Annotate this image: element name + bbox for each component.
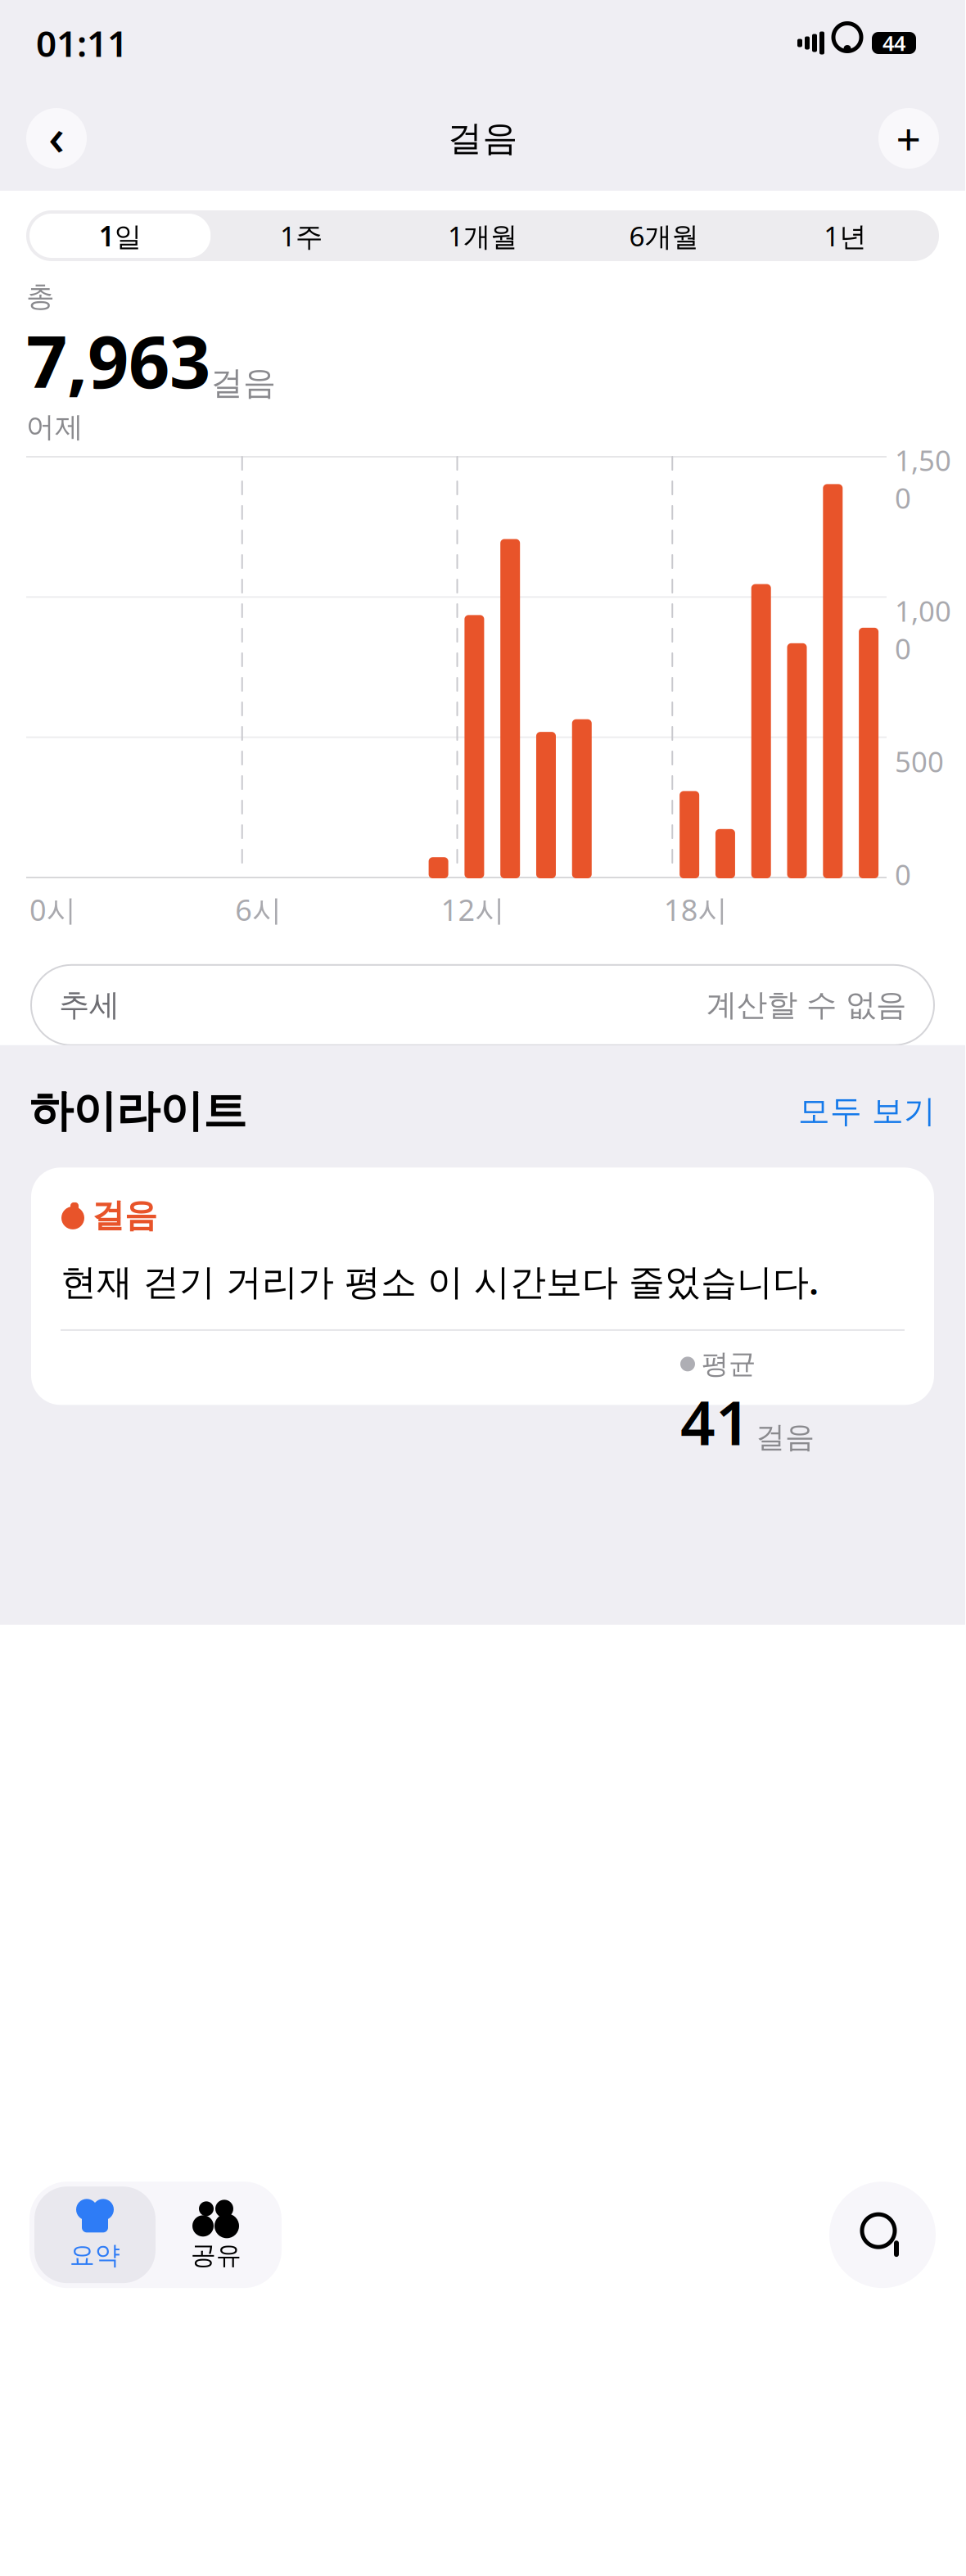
staticText: 1년 (824, 218, 866, 254)
button[interactable]: 1개월 (392, 214, 573, 258)
staticText: 어제 (26, 410, 84, 444)
staticText: 44 (882, 29, 905, 57)
staticText: 추세 (59, 986, 120, 1024)
button[interactable]: 모두 보기 (798, 1092, 936, 1131)
staticText: 평균 (702, 1347, 756, 1381)
button[interactable]: 걸음 (31, 1168, 934, 1405)
staticText: 1,500 (895, 441, 951, 517)
staticText: 1,000 (895, 592, 951, 667)
button[interactable]: 6개월 (573, 214, 754, 258)
staticText: 모두 보기 (798, 1092, 936, 1131)
staticText: 걸음 (447, 117, 518, 160)
staticText: 12시 (441, 890, 505, 929)
button[interactable]: 공유 (156, 2187, 277, 2283)
button[interactable]: 추가 (878, 108, 939, 169)
staticText: 0 (895, 855, 911, 893)
staticText: 1일 (99, 218, 141, 254)
staticText: 공유 (191, 2240, 241, 2271)
staticText: 걸음 (210, 363, 276, 403)
staticText: 현재 걷기 거리가 평소 이 시간보다 줄었습니다. (61, 1257, 819, 1305)
staticText: 1주 (280, 218, 323, 254)
button[interactable]: 요약 (34, 2187, 156, 2283)
staticText: ‹ (48, 103, 65, 169)
staticText: 계산할 수 없음 (706, 986, 906, 1024)
button[interactable]: 뒤로 (26, 103, 87, 174)
button[interactable]: 1주 (211, 214, 392, 258)
staticText: 6시 (235, 890, 282, 929)
staticText: + (896, 109, 921, 167)
staticText: 41 (680, 1381, 751, 1462)
staticText: 500 (895, 742, 944, 780)
staticText: 요약 (70, 2240, 120, 2271)
staticText: 하이라이트 (29, 1084, 246, 1138)
button[interactable]: 1년 (754, 214, 936, 258)
staticText: 걸음 (756, 1419, 815, 1455)
staticText: 18시 (664, 890, 728, 929)
button[interactable]: 1일 (29, 214, 211, 258)
button[interactable]: 검색 (829, 2182, 936, 2288)
staticText: 7,963 (26, 312, 210, 408)
staticText: 01:11 (36, 19, 128, 67)
button[interactable]: 추세 (31, 965, 934, 1045)
staticText: 걸음 (92, 1195, 157, 1236)
staticText: 6개월 (629, 218, 699, 254)
staticText: 0시 (29, 890, 76, 929)
staticText: 1개월 (448, 218, 517, 254)
staticText: 총 (26, 279, 55, 314)
